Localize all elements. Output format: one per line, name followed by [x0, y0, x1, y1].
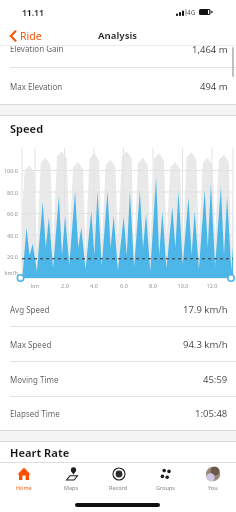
staticText: Groups [156, 484, 175, 491]
staticText: Max Speed [10, 339, 52, 350]
staticText: 40.0 [0, 232, 18, 239]
staticText: km/h [0, 269, 18, 276]
staticText: 60.0 [0, 210, 18, 217]
staticText: Max Elevation [10, 81, 63, 92]
staticText: 94.3 km/h [183, 338, 228, 351]
staticText: Heart Rate [10, 445, 70, 460]
staticText: 2.0 [53, 282, 77, 289]
staticText: 45:59 [203, 373, 228, 386]
staticText: Moving Time [10, 374, 59, 385]
button[interactable]: You [189, 463, 236, 491]
staticText: Record [109, 484, 128, 491]
staticText: 100.0 [0, 167, 18, 174]
staticText: Elapsed Time [10, 408, 60, 419]
staticText: Analysis [98, 29, 138, 42]
staticText: Avg Speed [10, 304, 50, 315]
staticText: 1,464 m [192, 46, 228, 56]
button[interactable]: Home [0, 463, 48, 491]
staticText: Maps [64, 484, 79, 491]
staticText: Home [16, 484, 32, 491]
button[interactable]: Record [95, 463, 142, 491]
staticText: 4G [187, 8, 196, 17]
staticText: 17.9 km/h [183, 303, 228, 316]
button[interactable]: Maps [48, 463, 95, 491]
button[interactable]: Ride [4, 28, 42, 44]
staticText: 6.0 [112, 282, 136, 289]
staticText: 10.0 [171, 282, 195, 289]
staticText: Ride [20, 29, 42, 43]
button[interactable]: Groups [142, 463, 189, 491]
staticText: 20.0 [0, 253, 18, 260]
staticText: km [23, 282, 47, 289]
staticText: Elevation Gain [10, 46, 64, 54]
staticText: 4.0 [82, 282, 106, 289]
staticText: Speed [10, 121, 44, 136]
staticText: 1:05:48 [195, 407, 228, 420]
staticText: 11.11 [22, 7, 44, 19]
staticText: You [208, 484, 218, 491]
staticText: 12.0 [200, 282, 224, 289]
staticText: 8.0 [141, 282, 165, 289]
staticText: 80.0 [0, 189, 18, 196]
staticText: 494 m [200, 80, 228, 93]
